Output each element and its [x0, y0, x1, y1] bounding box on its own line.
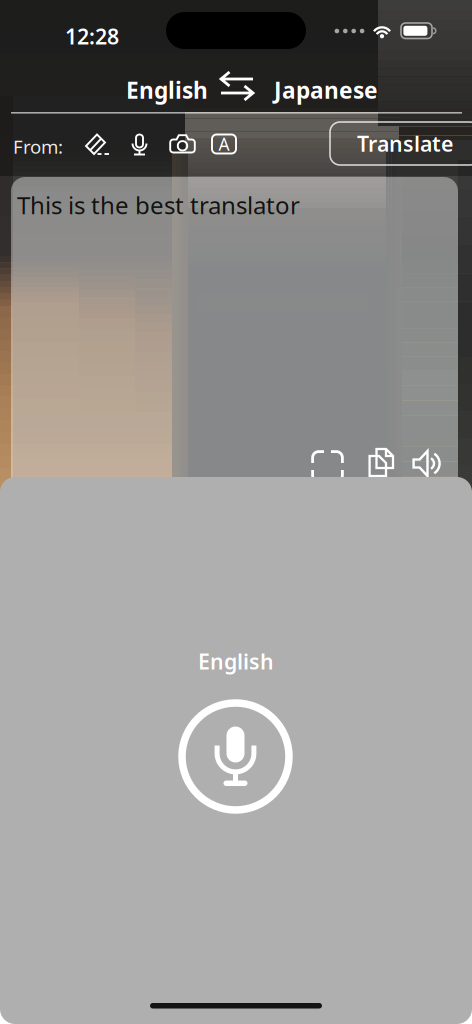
- staticText: 12:28: [65, 22, 119, 50]
- button[interactable]: Handwriting input: [83, 131, 111, 158]
- button[interactable]: Listen: [412, 448, 442, 480]
- button[interactable]: Start voice input: [182, 703, 289, 810]
- staticText: English: [126, 75, 208, 105]
- button[interactable]: Translate: [330, 122, 472, 165]
- button[interactable]: Select region: [311, 450, 344, 483]
- button[interactable]: Camera input: [169, 131, 196, 157]
- button[interactable]: Text input: [211, 131, 237, 157]
- staticText: Japanese: [274, 75, 378, 105]
- staticText: Translate: [357, 129, 453, 158]
- staticText: A: [218, 132, 229, 155]
- staticText: From:: [13, 134, 63, 159]
- staticText: English: [198, 647, 274, 675]
- button[interactable]: Swap languages: [218, 72, 256, 101]
- button[interactable]: English: [126, 75, 208, 105]
- button[interactable]: Voice input: [128, 131, 151, 158]
- button[interactable]: Copy text: [368, 447, 395, 478]
- button[interactable]: Japanese: [274, 75, 378, 105]
- staticText: This is the best translator: [17, 189, 300, 221]
